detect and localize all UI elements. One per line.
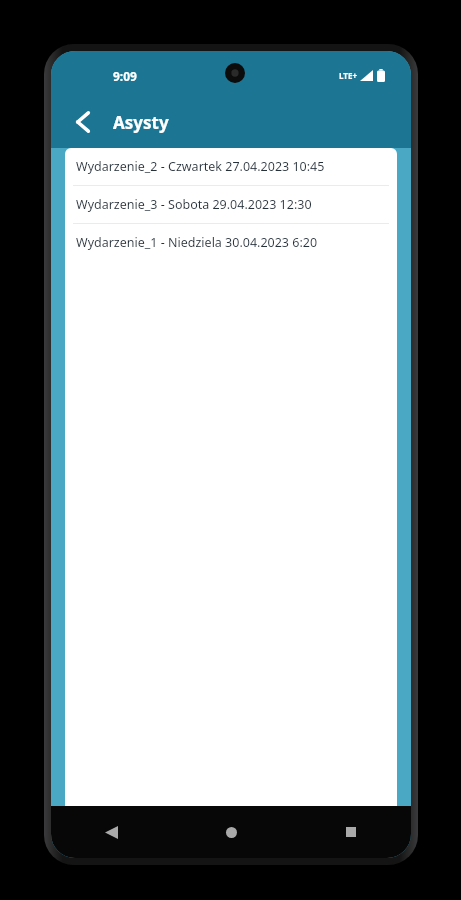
staticText: Asysty	[113, 111, 169, 134]
staticText: 9:09	[113, 68, 137, 84]
button[interactable]: Wydarzenie_3 - Sobota 29.04.2023 12:30	[65, 186, 397, 223]
staticText: Wydarzenie_2 - Czwartek 27.04.2023 10:45	[76, 158, 325, 175]
staticText: Wydarzenie_1 - Niedziela 30.04.2023 6:20	[76, 234, 318, 251]
button[interactable]: Wydarzenie_1 - Niedziela 30.04.2023 6:20	[65, 224, 397, 261]
button[interactable]: Back	[61, 100, 105, 144]
button[interactable]: Home	[171, 806, 291, 858]
staticText: Wydarzenie_3 - Sobota 29.04.2023 12:30	[76, 196, 312, 213]
button[interactable]: Wydarzenie_2 - Czwartek 27.04.2023 10:45	[65, 148, 397, 185]
staticText: LTE+	[339, 70, 357, 81]
button[interactable]: Recent apps	[291, 806, 411, 858]
button[interactable]: Back	[51, 806, 171, 858]
